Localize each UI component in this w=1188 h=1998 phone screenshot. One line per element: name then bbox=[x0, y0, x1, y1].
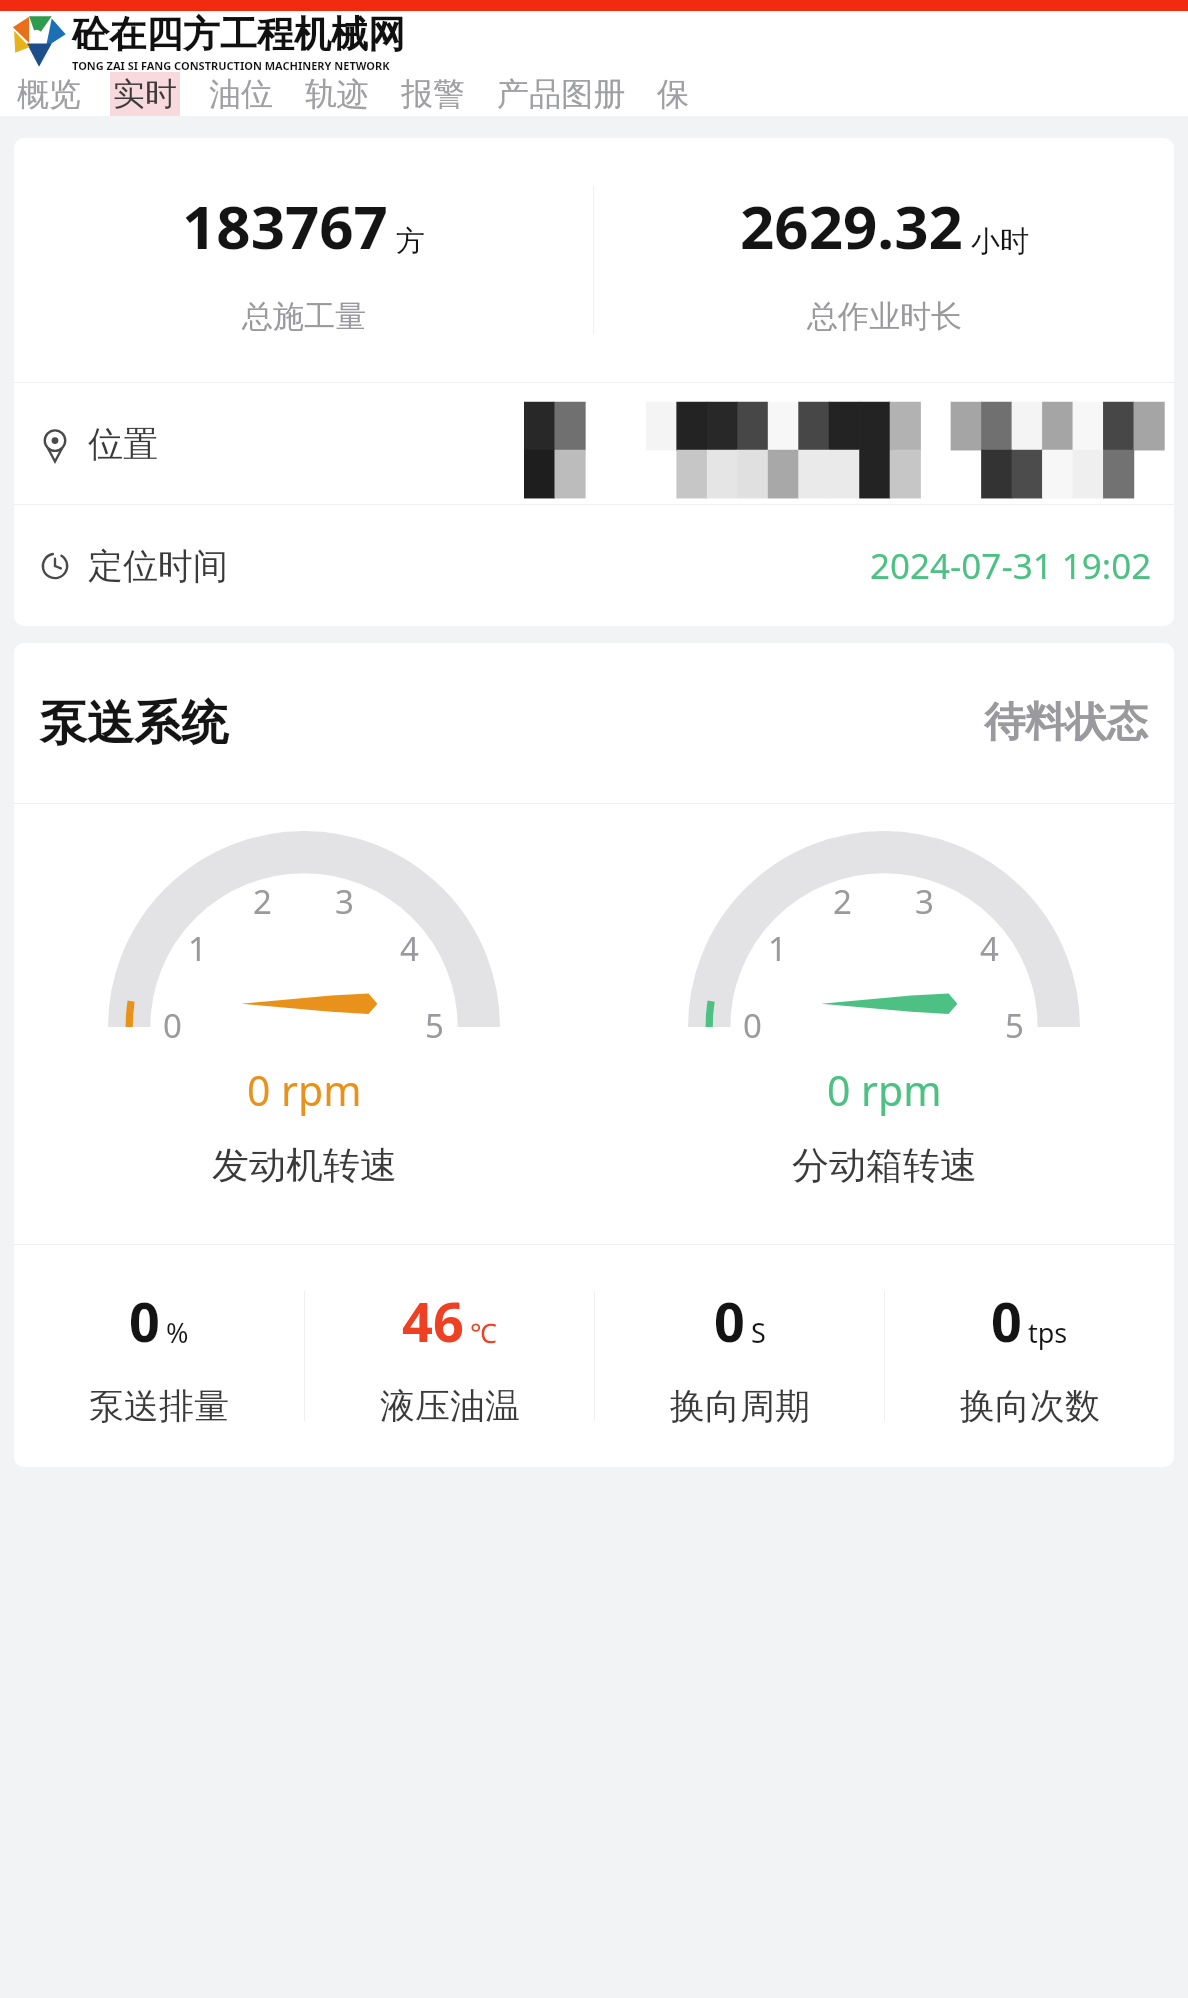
staticText: 泵送系统 bbox=[40, 694, 228, 753]
staticText: 2 bbox=[253, 879, 272, 924]
staticText: % bbox=[166, 1314, 189, 1351]
other: Location bbox=[36, 425, 74, 463]
staticText: 2024-07-31 19:02 bbox=[870, 542, 1152, 590]
staticText: S bbox=[751, 1314, 766, 1351]
button[interactable]: 0 bbox=[595, 1245, 884, 1467]
staticText: 待料状态 bbox=[984, 697, 1148, 749]
staticText: 0 rpm bbox=[827, 1062, 942, 1118]
button[interactable]: 产品图册 bbox=[494, 72, 628, 116]
staticText: 0 bbox=[714, 1284, 745, 1358]
staticText: tps bbox=[1028, 1314, 1068, 1351]
button[interactable]: 报警 bbox=[398, 72, 468, 116]
staticText: 轨迹 bbox=[305, 74, 369, 114]
button[interactable]: Time bbox=[14, 505, 1174, 626]
staticText: 换向次数 bbox=[960, 1384, 1100, 1428]
button[interactable]: 2629.32 bbox=[594, 138, 1174, 382]
other: Time bbox=[36, 547, 74, 585]
staticText: 小时 bbox=[971, 223, 1029, 260]
button[interactable]: 46 bbox=[305, 1245, 594, 1467]
staticText: 位置 bbox=[88, 422, 158, 466]
staticText: 0 bbox=[743, 1003, 762, 1048]
staticText: 183767 bbox=[182, 185, 388, 267]
staticText: 方 bbox=[396, 223, 425, 260]
staticText: 0 rpm bbox=[247, 1062, 362, 1118]
staticText: 5 bbox=[425, 1003, 444, 1048]
button[interactable]: 实时 bbox=[110, 72, 180, 116]
staticText: 0 bbox=[129, 1284, 160, 1358]
staticText: 泵送排量 bbox=[89, 1384, 229, 1428]
staticText: 0 bbox=[991, 1284, 1022, 1358]
staticText: 报警 bbox=[401, 74, 465, 114]
staticText: 分动箱转速 bbox=[792, 1142, 977, 1189]
button[interactable]: 0 bbox=[594, 804, 1174, 1244]
staticText: 3 bbox=[335, 879, 354, 924]
button[interactable]: 保 bbox=[654, 72, 692, 116]
button[interactable]: 0 bbox=[885, 1245, 1174, 1467]
staticText: 产品图册 bbox=[497, 74, 625, 114]
button[interactable]: 0 bbox=[14, 1245, 304, 1467]
staticText: 0 bbox=[163, 1003, 182, 1048]
button[interactable]: 183767 bbox=[14, 138, 593, 382]
staticText: 换向周期 bbox=[670, 1384, 810, 1428]
button[interactable]: 轨迹 bbox=[302, 72, 372, 116]
staticText: 总施工量 bbox=[242, 297, 366, 336]
staticText: 保 bbox=[657, 74, 689, 114]
staticText: 1 bbox=[188, 926, 207, 971]
staticText: 5 bbox=[1005, 1003, 1024, 1048]
staticText: 3 bbox=[915, 879, 934, 924]
staticText: 46 bbox=[402, 1284, 464, 1358]
staticText: 4 bbox=[400, 926, 419, 971]
staticText: 砼在四方工程机械网 bbox=[72, 11, 405, 58]
button[interactable]: 泵送系统 bbox=[14, 643, 1174, 803]
button[interactable]: 概览 bbox=[14, 72, 84, 116]
staticText: 总作业时长 bbox=[807, 297, 962, 336]
button[interactable]: Location bbox=[14, 383, 1174, 504]
staticText: 油位 bbox=[209, 74, 273, 114]
staticText: 液压油温 bbox=[380, 1384, 520, 1428]
staticText: 2629.32 bbox=[740, 185, 963, 267]
staticText: 1 bbox=[768, 926, 787, 971]
staticText: 实时 bbox=[113, 74, 177, 114]
staticText: 2 bbox=[833, 879, 852, 924]
staticText: 4 bbox=[980, 926, 999, 971]
staticText: TONG ZAI SI FANG CONSTRUCTION MACHINERY … bbox=[72, 58, 390, 73]
staticText: 概览 bbox=[17, 74, 81, 114]
button[interactable]: 0 bbox=[14, 804, 594, 1244]
staticText: ℃ bbox=[470, 1314, 497, 1351]
button[interactable]: 油位 bbox=[206, 72, 276, 116]
staticText: 发动机转速 bbox=[212, 1142, 397, 1189]
staticText: 定位时间 bbox=[88, 544, 228, 588]
